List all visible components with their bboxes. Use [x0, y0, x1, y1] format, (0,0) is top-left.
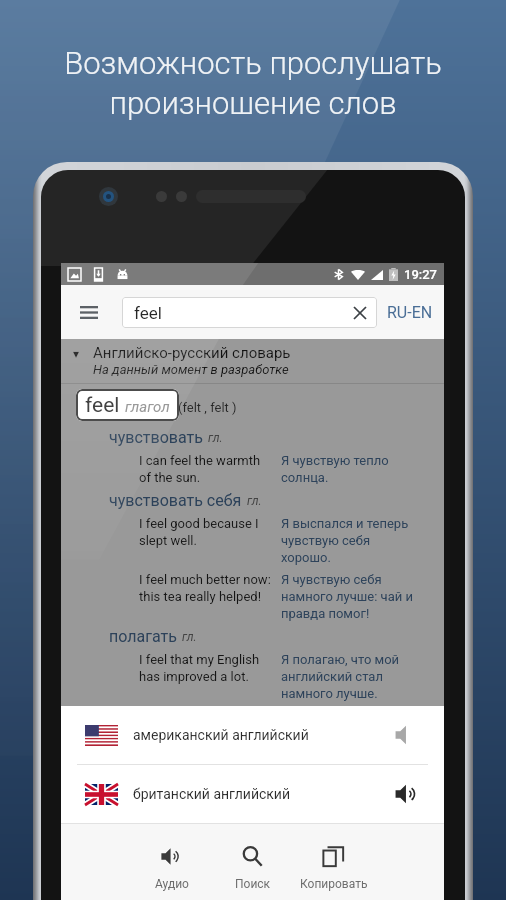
staticText: Копировать [300, 877, 368, 891]
staticText: (felt , felt ) [178, 400, 237, 415]
staticText: Я полагаю, что мой английский стал намно… [281, 652, 418, 702]
staticText: I feel that my English has improved a lo… [139, 652, 273, 685]
staticText: I feel much better now: this tea really … [139, 572, 273, 605]
staticText: британский английский [133, 786, 291, 802]
staticText: feel [134, 303, 162, 323]
button[interactable]: feel [76, 389, 179, 421]
button[interactable]: британский английский [61, 765, 444, 823]
staticText: ▾ [73, 347, 80, 361]
button[interactable]: Clear [345, 298, 375, 328]
staticText: Возможность прослушать произношение слов [64, 45, 442, 122]
button[interactable]: Menu [67, 290, 111, 334]
staticText: чувствовать [109, 428, 203, 447]
staticText: Поиск [235, 877, 271, 891]
staticText: RU-EN [387, 303, 433, 322]
button[interactable]: Копировать [293, 824, 374, 900]
staticText: feel [85, 393, 120, 418]
staticText: американский английский [133, 727, 309, 743]
staticText: 19:27 [404, 267, 437, 282]
staticText: I feel good because I slept well. [139, 516, 273, 549]
staticText: глагол [125, 398, 170, 416]
button[interactable]: Поиск [212, 824, 293, 900]
staticText: На данный момент в разработке [93, 362, 289, 377]
staticText: I can feel the warmth of the sun. [139, 453, 273, 486]
staticText: полагать [109, 627, 177, 646]
staticText: гл. [247, 494, 262, 508]
button[interactable]: RU-EN [385, 295, 435, 330]
staticText: гл. [182, 630, 197, 644]
staticText: Я чувствую тепло солнца. [281, 453, 418, 486]
button[interactable]: американский английский [61, 706, 444, 764]
staticText: гл. [208, 431, 223, 445]
staticText: Аудио [155, 877, 189, 891]
staticText: Английско-русский словарь [93, 344, 291, 362]
staticText: Я выспался и теперь чувствую себя хорошо… [281, 516, 418, 566]
button[interactable]: feel [122, 297, 377, 328]
staticText: Я чувствую себя намного лучше: чай и пра… [281, 572, 418, 622]
button[interactable]: Аудио [131, 824, 212, 900]
staticText: чувствовать себя [109, 491, 242, 510]
